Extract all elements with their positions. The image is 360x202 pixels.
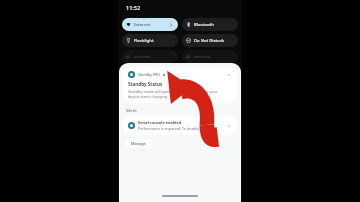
staticText: Do Not Disturb bbox=[194, 38, 225, 44]
staticText: Standby Status bbox=[128, 81, 163, 87]
button[interactable]: Standby PRO bbox=[123, 67, 237, 103]
button[interactable]: Internet bbox=[122, 18, 178, 31]
staticText: Performance is impacted. To disable, che… bbox=[138, 126, 215, 131]
staticText: Standby PRO bbox=[138, 72, 161, 77]
button[interactable]: Serial console enabled bbox=[123, 116, 237, 135]
button[interactable]: Manage bbox=[125, 139, 152, 148]
button[interactable] bbox=[122, 50, 178, 63]
button[interactable]: Do Not Disturb bbox=[182, 34, 238, 47]
staticText: device starts charging. bbox=[128, 94, 169, 99]
staticText: 11:52 bbox=[126, 4, 141, 11]
button[interactable]: Bluetooth bbox=[182, 18, 238, 31]
staticText: Standby mode will automatically launch o… bbox=[128, 89, 218, 94]
staticText: Silent bbox=[126, 108, 137, 113]
button[interactable] bbox=[182, 50, 238, 63]
button[interactable]: Collapse notification bbox=[225, 71, 232, 78]
staticText: Internet bbox=[134, 22, 151, 28]
staticText: Serial console enabled bbox=[138, 120, 182, 125]
staticText: Manage bbox=[131, 141, 146, 146]
staticText: Bluetooth bbox=[194, 22, 214, 28]
button[interactable]: Expand notification bbox=[225, 122, 232, 129]
button[interactable]: Flashlight bbox=[122, 34, 178, 47]
staticText: Flashlight bbox=[134, 38, 154, 44]
